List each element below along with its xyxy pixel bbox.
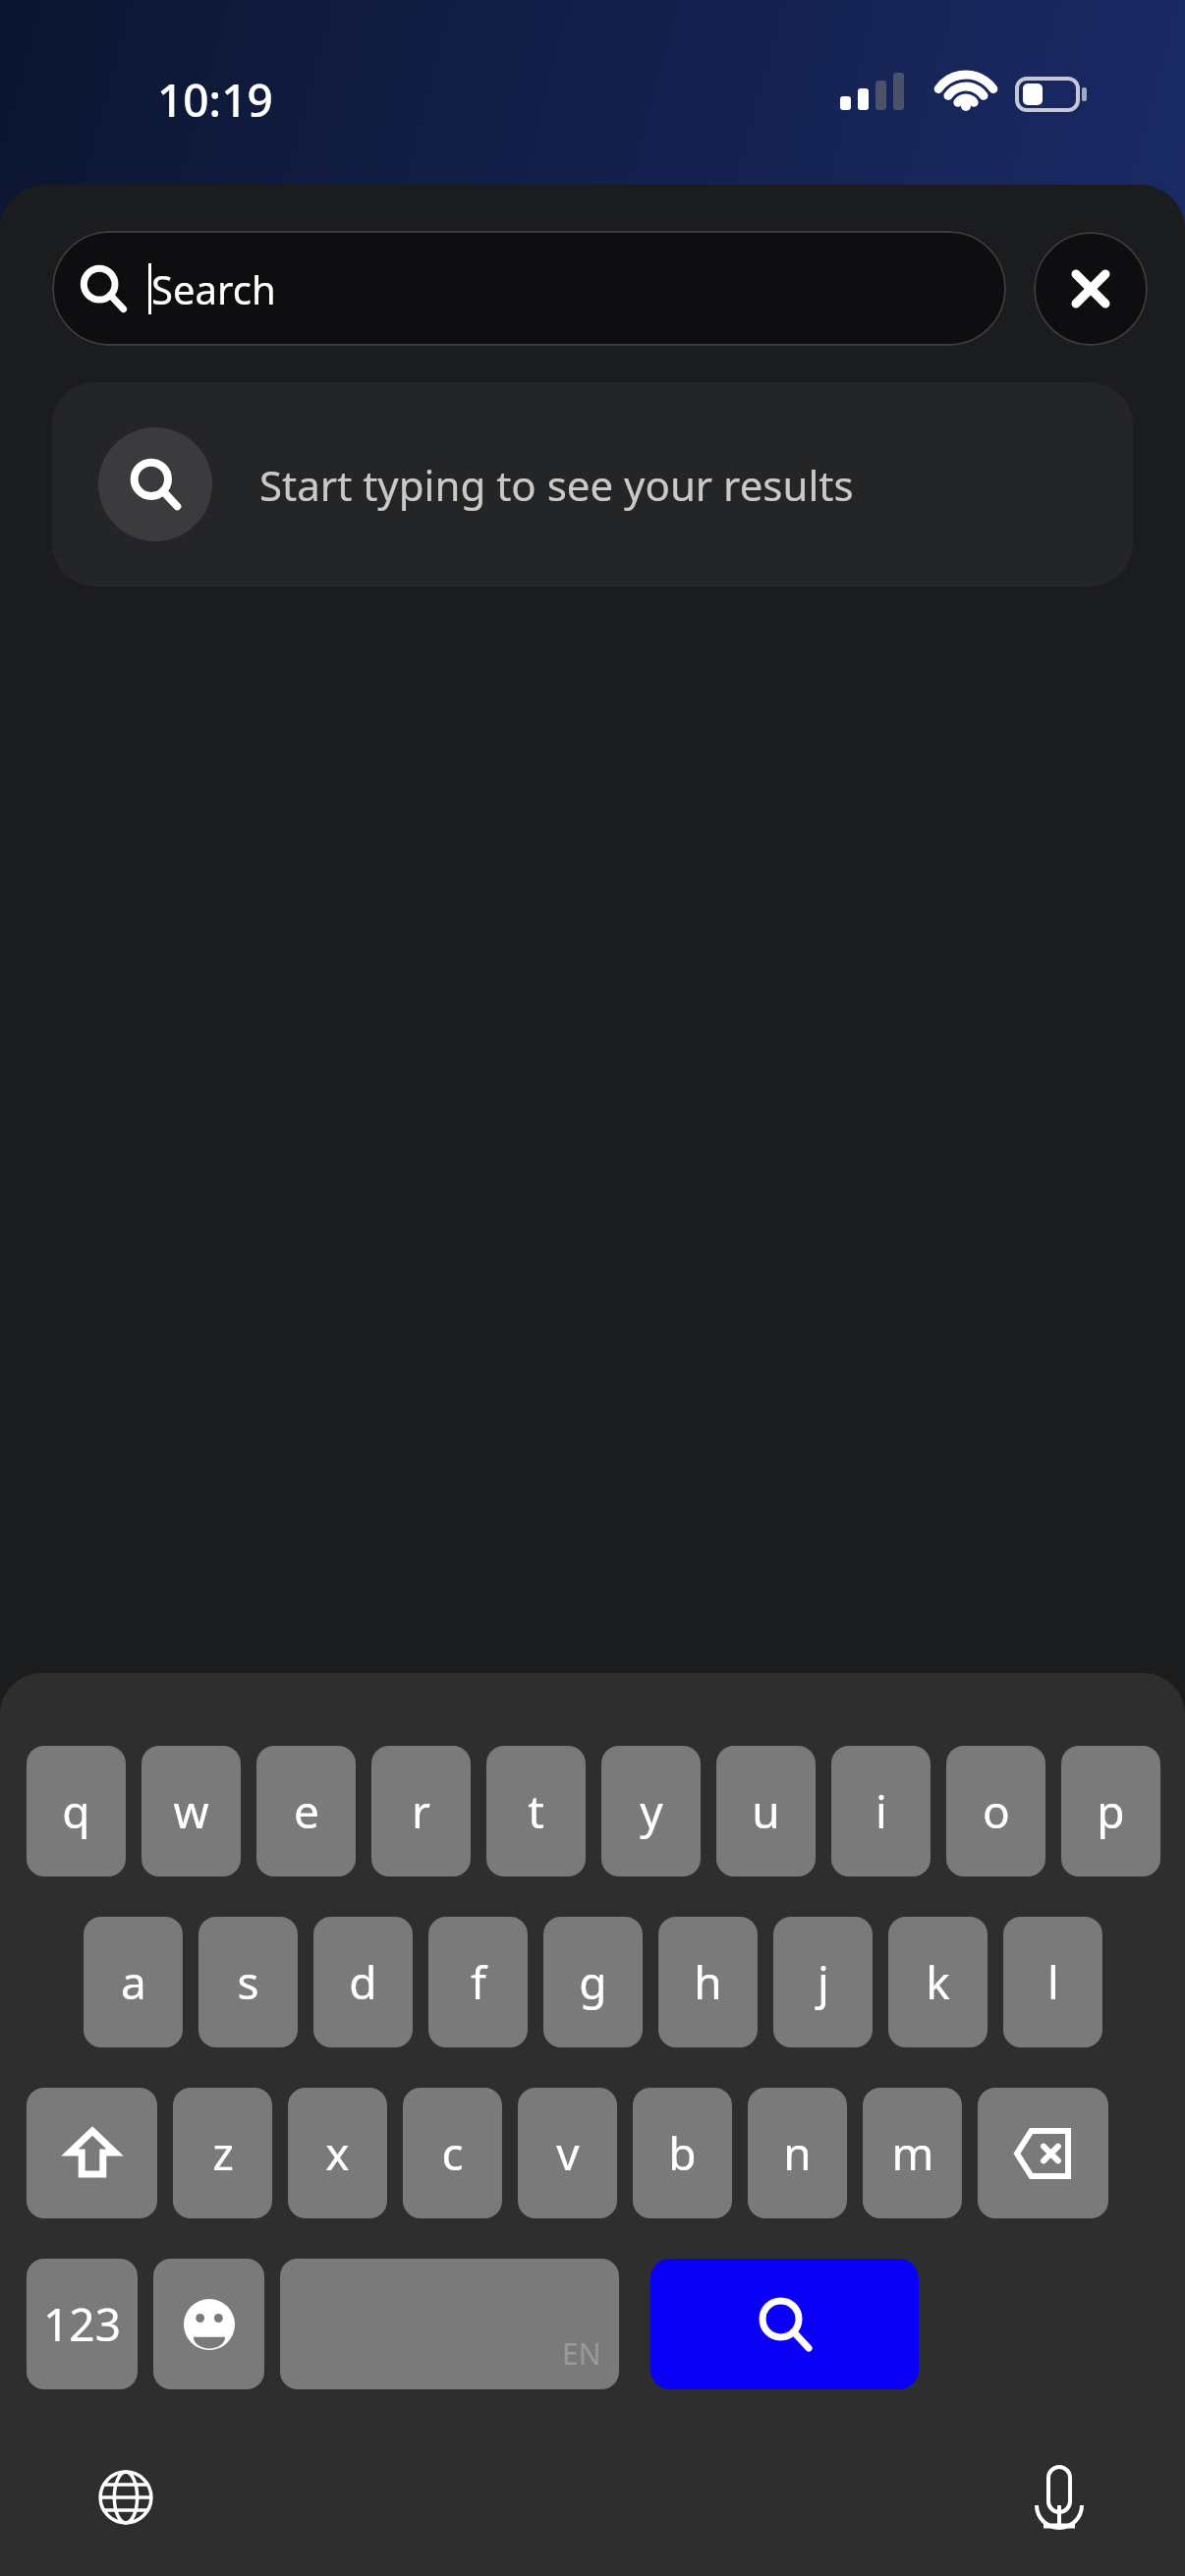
staticText: j [818,1951,829,2013]
staticText: x [325,2122,350,2184]
button[interactable]: Space [280,2259,619,2389]
button[interactable]: Voice input [1012,2450,1106,2545]
staticText: v [556,2122,580,2184]
button[interactable]: 123 [27,2259,138,2389]
button[interactable]: c [403,2088,502,2218]
staticText: g [579,1951,607,2013]
staticText: u [752,1780,780,1842]
button[interactable]: h [658,1917,758,2047]
button[interactable]: Search [650,2259,919,2389]
button[interactable]: y [601,1746,701,1876]
button[interactable]: p [1061,1746,1160,1876]
button[interactable]: r [371,1746,471,1876]
staticText: k [926,1951,950,2013]
button[interactable]: u [716,1746,816,1876]
staticText: d [349,1951,377,2013]
staticText: Search [151,262,276,315]
button[interactable]: t [486,1746,586,1876]
staticText: i [875,1780,887,1842]
button[interactable]: x [288,2088,387,2218]
staticText: t [528,1780,544,1842]
staticText: b [668,2122,697,2184]
staticText: f [471,1951,486,2013]
staticText: m [891,2122,934,2184]
button[interactable]: Emoji [153,2259,264,2389]
staticText: l [1047,1951,1059,2013]
staticText: w [173,1780,209,1842]
staticText: n [783,2122,812,2184]
staticText: c [441,2122,464,2184]
staticText: s [237,1951,259,2013]
staticText: r [412,1780,430,1842]
staticText: e [294,1780,319,1842]
button[interactable]: b [633,2088,732,2218]
button[interactable]: k [888,1917,987,2047]
button[interactable]: Shift [27,2088,157,2218]
staticText: 10:19 [157,69,273,131]
button[interactable]: i [831,1746,931,1876]
button[interactable]: Close search [1034,232,1148,346]
button[interactable]: Search [52,231,1006,346]
button[interactable]: s [198,1917,298,2047]
button[interactable]: Start typing to see your results [52,382,1133,587]
staticText: q [62,1780,90,1842]
button[interactable]: Backspace [978,2088,1108,2218]
button[interactable]: w [141,1746,241,1876]
staticText: y [640,1780,663,1842]
staticText: 123 [43,2293,121,2355]
button[interactable]: g [543,1917,643,2047]
button[interactable]: o [946,1746,1045,1876]
button[interactable]: q [27,1746,126,1876]
staticText: z [212,2122,234,2184]
button[interactable]: z [173,2088,272,2218]
button[interactable]: v [518,2088,617,2218]
button[interactable]: l [1003,1917,1102,2047]
button[interactable]: Change language [79,2450,173,2545]
button[interactable]: d [313,1917,413,2047]
button[interactable]: j [773,1917,873,2047]
button[interactable]: f [428,1917,528,2047]
staticText: o [983,1780,1010,1842]
button[interactable]: a [84,1917,183,2047]
staticText: EN [562,2333,601,2374]
button[interactable]: n [748,2088,847,2218]
staticText: p [1097,1780,1125,1842]
staticText: a [121,1951,146,2013]
staticText: Start typing to see your results [259,457,854,513]
button[interactable]: m [863,2088,962,2218]
button[interactable]: e [256,1746,356,1876]
staticText: h [694,1951,722,2013]
